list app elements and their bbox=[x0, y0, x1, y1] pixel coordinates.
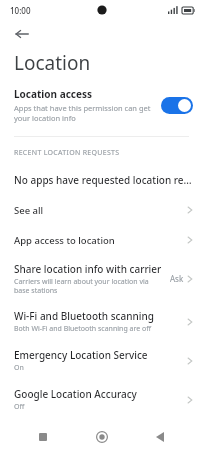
staticText: See all bbox=[14, 204, 187, 217]
button[interactable]: Share location info with carrier bbox=[0, 255, 203, 302]
staticText: Location bbox=[14, 50, 91, 76]
button[interactable]: Emergency Location Service bbox=[0, 341, 203, 380]
staticText: App access to location bbox=[14, 234, 187, 247]
staticText: Both Wi-Fi and Bluetooth scanning are of… bbox=[14, 324, 152, 334]
staticText: Share location info with carrier bbox=[14, 262, 162, 276]
button[interactable]: Home bbox=[87, 422, 117, 452]
staticText: On bbox=[14, 363, 24, 373]
button[interactable]: See all bbox=[0, 195, 203, 225]
button[interactable]: No apps have requested location recent… bbox=[0, 164, 203, 195]
staticText: RECENT LOCATION REQUESTS bbox=[14, 148, 120, 158]
staticText: Carriers will learn about your location … bbox=[14, 277, 166, 295]
button[interactable]: App access to location bbox=[0, 225, 203, 255]
staticText: Apps that have this permission can get y… bbox=[14, 103, 155, 123]
button[interactable]: Recent apps bbox=[28, 422, 58, 452]
staticText: Off bbox=[14, 402, 25, 412]
staticText: No apps have requested location recent… bbox=[14, 173, 193, 187]
button[interactable]: Google Location Accuracy bbox=[0, 380, 203, 419]
button[interactable]: Location access toggle bbox=[161, 97, 193, 114]
staticText: Wi-Fi and Bluetooth scanning bbox=[14, 309, 154, 323]
staticText: 10:00 bbox=[10, 5, 31, 16]
button[interactable]: Location access bbox=[0, 78, 203, 127]
staticText: Emergency Location Service bbox=[14, 348, 148, 362]
staticText: Ask bbox=[170, 273, 184, 284]
button[interactable]: Back bbox=[8, 20, 36, 48]
staticText: Google Location Accuracy bbox=[14, 387, 137, 401]
staticText: Location access bbox=[14, 87, 92, 101]
button[interactable]: Back bbox=[145, 422, 175, 452]
button[interactable]: Wi-Fi and Bluetooth scanning bbox=[0, 302, 203, 341]
